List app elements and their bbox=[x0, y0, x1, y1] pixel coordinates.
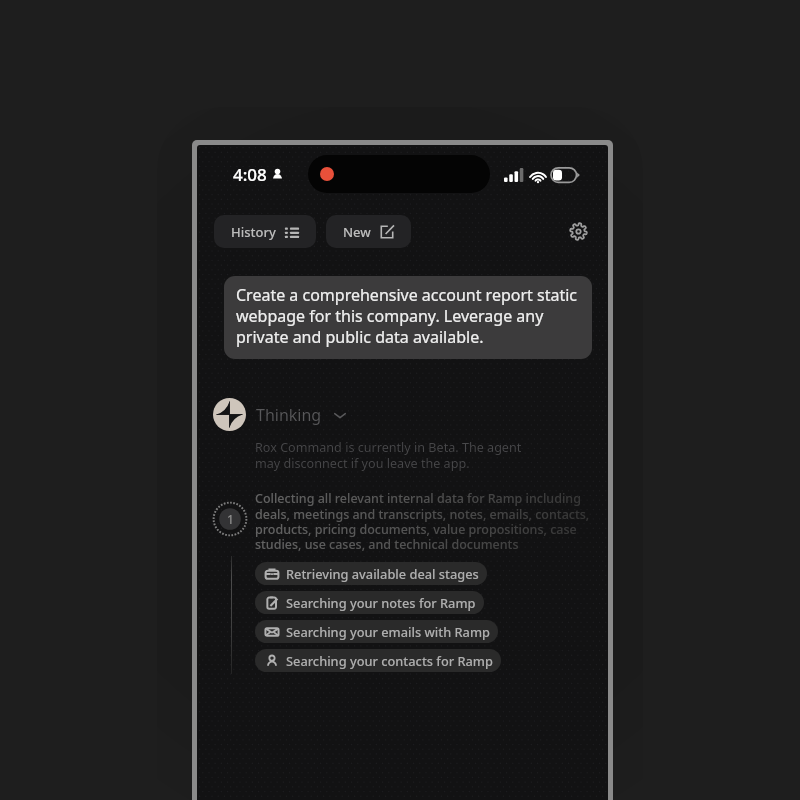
staticText: 4:08 bbox=[233, 163, 267, 186]
staticText: 1 bbox=[227, 511, 234, 527]
staticText: New bbox=[343, 223, 371, 241]
button[interactable]: Searching your emails with Ramp bbox=[255, 620, 498, 643]
staticText: Retrieving available deal stages bbox=[286, 565, 479, 582]
button[interactable]: Settings bbox=[566, 219, 591, 244]
button[interactable]: History bbox=[214, 215, 316, 248]
button[interactable]: Create a comprehensive account report st… bbox=[224, 276, 592, 359]
button[interactable]: Searching your contacts for Ramp bbox=[255, 649, 501, 672]
staticText: Searching your notes for Ramp bbox=[286, 594, 476, 611]
staticText: Searching your emails with Ramp bbox=[286, 623, 490, 640]
button[interactable]: Thinking bbox=[213, 398, 347, 431]
button[interactable]: New bbox=[326, 215, 411, 248]
staticText: Rox Command is currently in Beta. The ag… bbox=[255, 439, 522, 471]
button[interactable]: Retrieving available deal stages bbox=[255, 562, 487, 585]
staticText: History bbox=[231, 223, 276, 241]
staticText: Searching your contacts for Ramp bbox=[286, 652, 493, 669]
staticText: Collecting all relevant internal data fo… bbox=[255, 490, 599, 552]
staticText: Thinking bbox=[256, 404, 322, 426]
button[interactable]: Searching your notes for Ramp bbox=[255, 591, 484, 614]
staticText: Create a comprehensive account report st… bbox=[236, 284, 581, 348]
